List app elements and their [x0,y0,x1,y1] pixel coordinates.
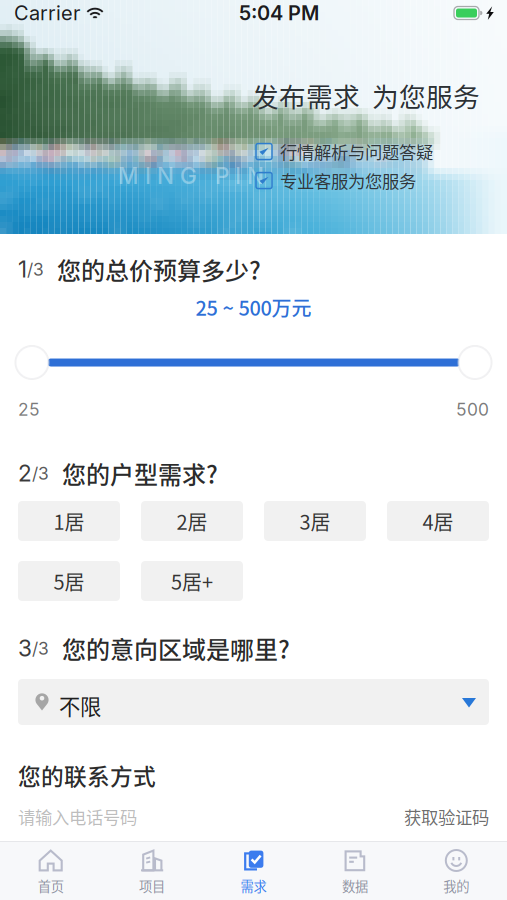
staticText: 您的户型需求? [62,456,218,491]
button[interactable]: 需求 [203,841,304,900]
button[interactable]: 4居 [387,501,489,541]
staticText: 2 [18,460,32,487]
staticText: 我的 [443,876,469,895]
staticText: 数据 [342,876,368,895]
staticText: 您的联系方式 [18,759,156,792]
staticText: 2居 [176,506,207,535]
staticText: /3 [27,259,44,280]
staticText: 4居 [422,506,453,535]
staticText: 5:04 PM [239,1,319,25]
button[interactable]: 首页 [0,841,101,900]
staticText: 需求 [240,876,266,895]
button[interactable]: 2居 [141,501,243,541]
staticText: 您的总价预算多少? [57,252,261,287]
staticText: /3 [32,463,49,484]
staticText: /3 [32,638,49,659]
button[interactable]: 1居 [18,501,120,541]
button[interactable]: Minimum budget [14,345,49,380]
staticText: 不限 [59,690,101,721]
button[interactable]: 数据 [304,841,406,900]
staticText: 3居 [299,506,330,535]
button[interactable]: 我的 [406,841,507,900]
staticText: 500 [456,399,489,420]
button[interactable]: 获取验证码 [404,804,489,829]
button[interactable]: 项目 [101,841,203,900]
staticText: 1居 [53,506,84,535]
button[interactable]: 5居 [18,561,120,601]
staticText: 25 [18,399,40,420]
staticText: 3 [18,635,32,662]
staticText: M I N G P I N [118,162,264,189]
button[interactable]: 不限 [18,679,489,725]
staticText: 您的意向区域是哪里? [62,631,290,666]
button[interactable]: 5居+ [141,561,243,601]
staticText: 行情解析与问题答疑 [280,139,433,164]
staticText: 5居 [53,566,84,595]
staticText: 获取验证码 [404,804,489,829]
staticText: 5居+ [171,566,213,595]
staticText: 25 ~ 500万元 [195,292,311,321]
staticText: 首页 [38,876,64,895]
staticText: 发布需求 为您服务 [252,76,480,115]
staticText: 请输入电话号码 [18,804,137,829]
staticText: 1 [18,256,27,283]
staticText: Carrier [14,1,80,25]
staticText: 专业客服为您服务 [280,168,416,193]
button[interactable]: 3居 [264,501,366,541]
button[interactable]: Maximum budget [457,345,492,380]
staticText: 项目 [139,876,165,895]
